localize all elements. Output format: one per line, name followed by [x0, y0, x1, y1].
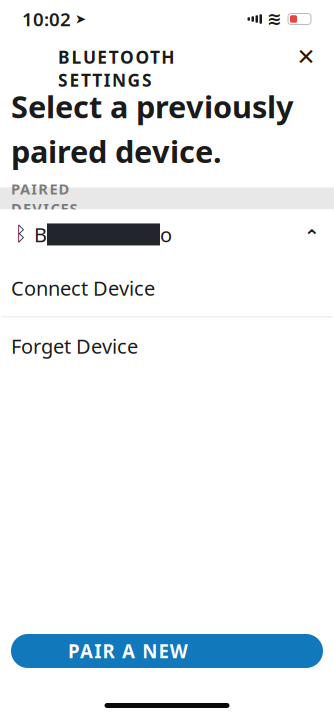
staticText: B	[34, 221, 47, 248]
staticText: BLUETOOTH SETTINGS	[58, 45, 276, 68]
button[interactable]: PAIR A NEW DEVICE	[11, 634, 323, 668]
staticText: ✕	[296, 44, 315, 70]
staticText: PAIRED DEVICES	[11, 179, 78, 218]
staticText: PAIR A NEW DEVICE	[68, 639, 266, 663]
staticText: Select a previously paired device.	[11, 86, 294, 171]
staticText: ≋	[267, 9, 282, 29]
staticText: ⌃	[304, 226, 320, 247]
staticText: Forget Device	[11, 333, 138, 359]
staticText: Connect Device	[11, 275, 155, 301]
staticText: 10:02	[22, 7, 71, 31]
staticText: o	[160, 221, 172, 248]
button[interactable]: Forget Device	[0, 317, 334, 374]
staticText: ➤	[75, 11, 86, 26]
button[interactable]: ᛒ	[0, 209, 334, 259]
button[interactable]: Connect Device	[0, 259, 334, 316]
button[interactable]: Close	[286, 40, 326, 74]
staticText: ᛒ	[15, 225, 27, 244]
